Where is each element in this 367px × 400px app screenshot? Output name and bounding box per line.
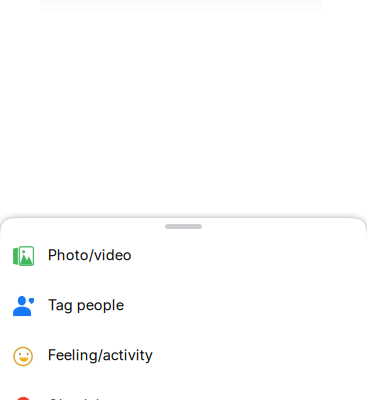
button[interactable]: Feeling/activity bbox=[0, 331, 367, 381]
staticText: Tag people bbox=[48, 296, 124, 314]
staticText: Feeling/activity bbox=[48, 346, 153, 364]
button[interactable]: Check in bbox=[0, 381, 367, 400]
staticText: Photo/video bbox=[48, 246, 132, 264]
button[interactable]: Tag people bbox=[0, 281, 367, 331]
staticText: Check in bbox=[48, 396, 109, 400]
button[interactable]: Photo/video bbox=[0, 231, 367, 281]
